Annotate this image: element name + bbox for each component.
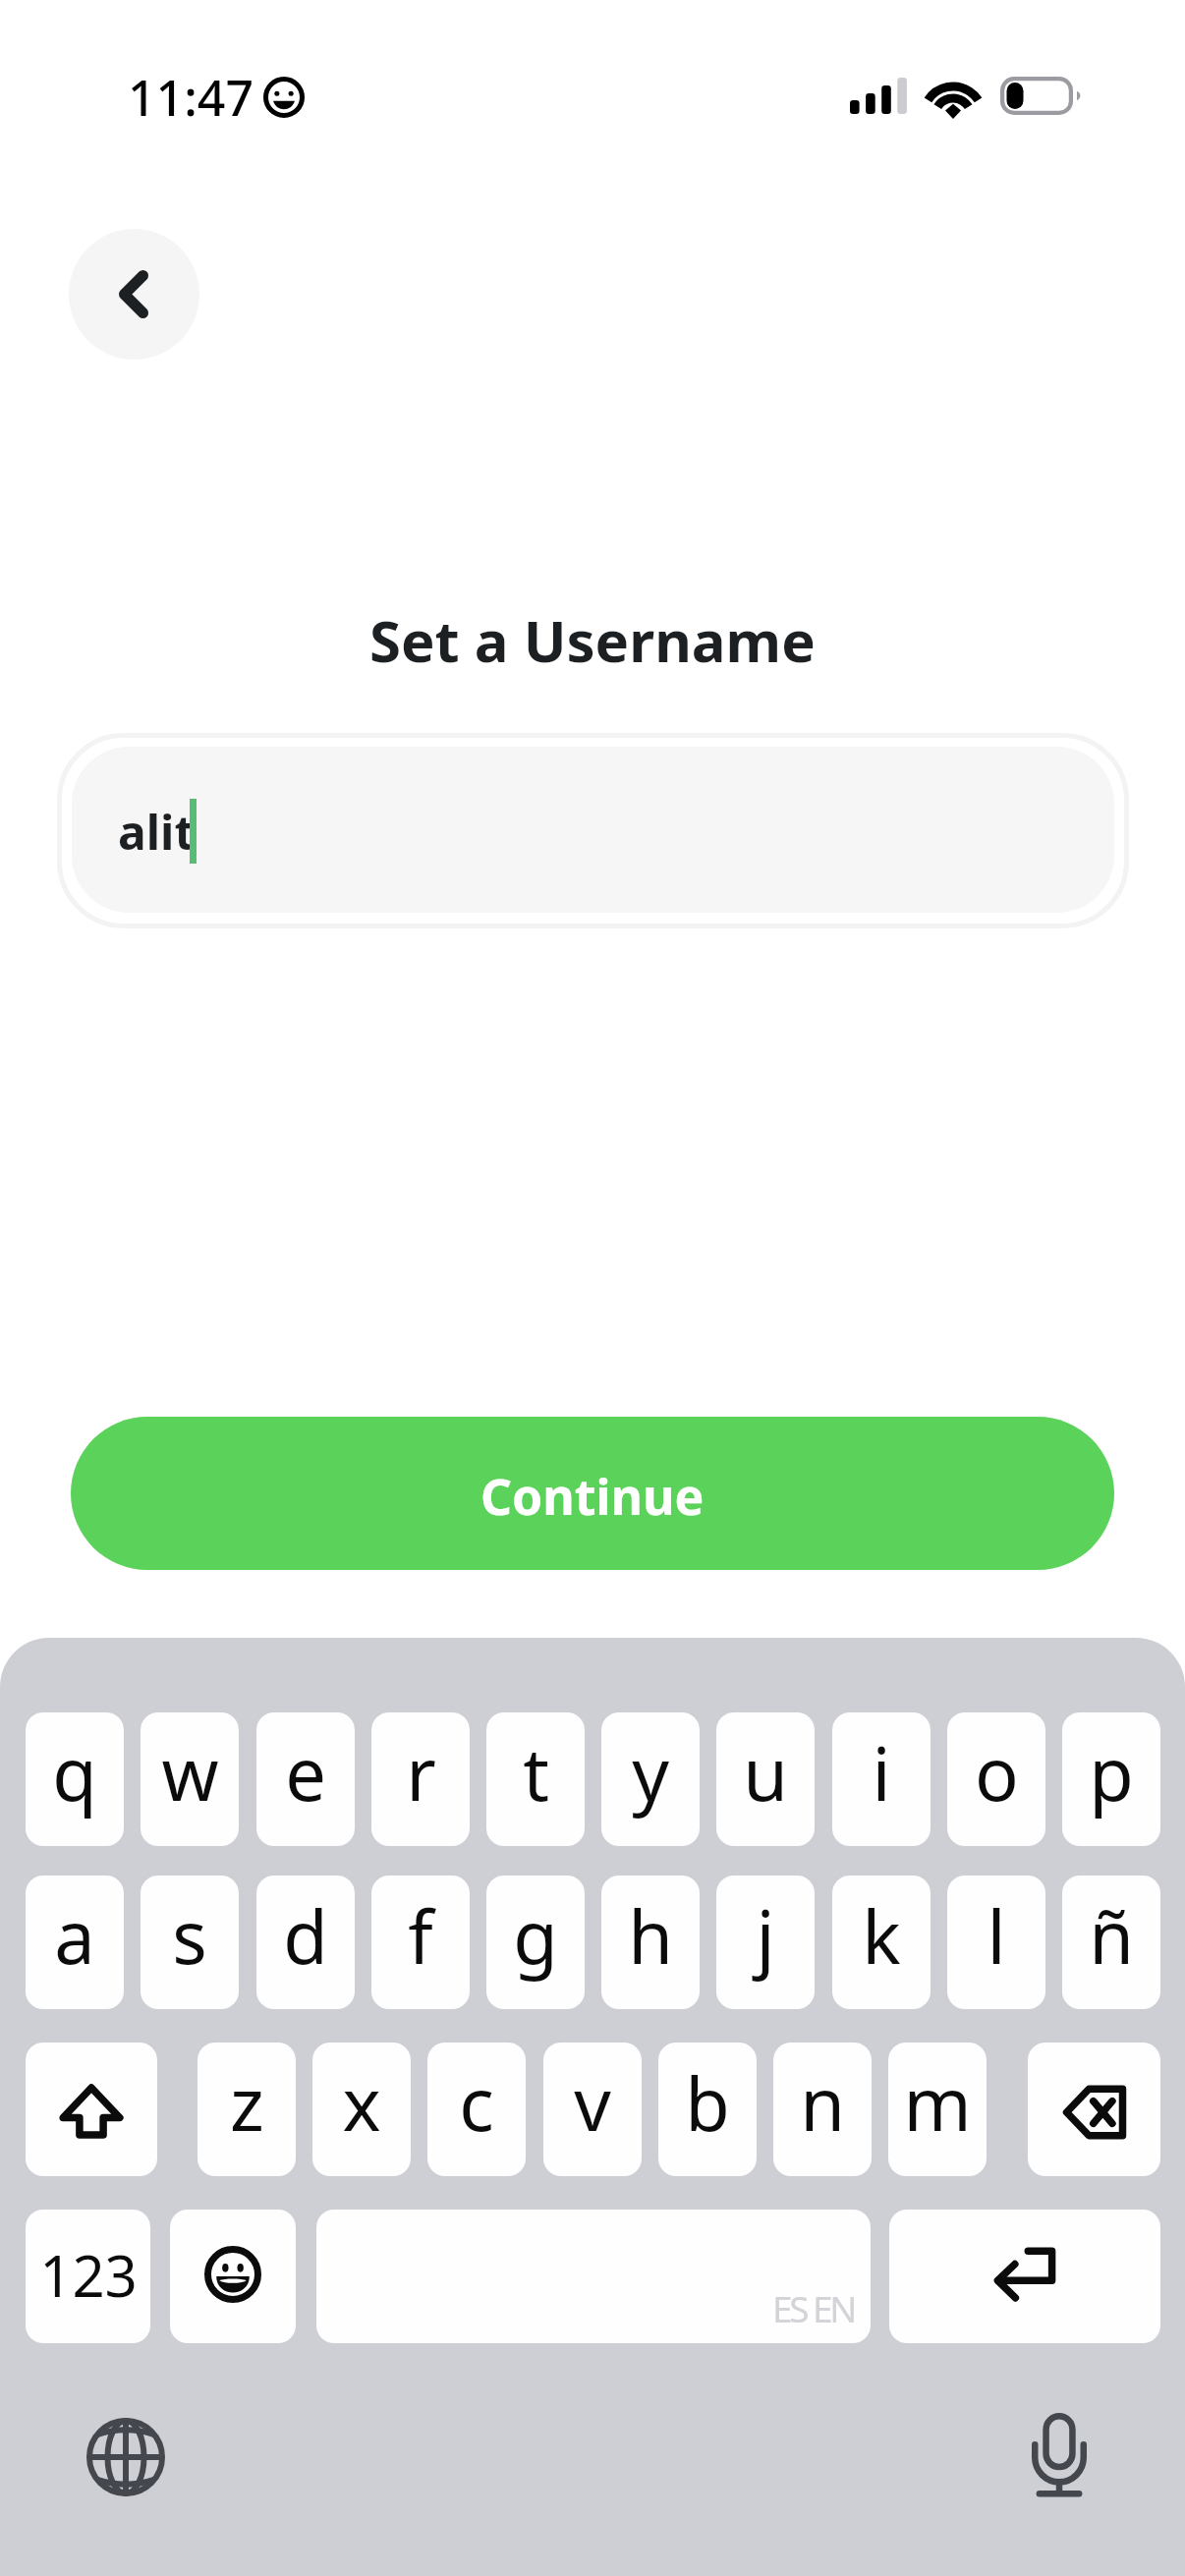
button[interactable]: alit <box>57 733 1129 928</box>
button[interactable]: Emoji <box>170 2210 296 2343</box>
staticText: 123 <box>39 2236 138 2314</box>
staticText: v <box>574 2053 611 2153</box>
button[interactable]: Space <box>316 2210 871 2343</box>
button[interactable]: r <box>371 1712 470 1846</box>
button[interactable]: u <box>716 1712 815 1846</box>
staticText: alit <box>118 800 196 864</box>
button[interactable]: k <box>832 1876 931 2009</box>
staticText: o <box>975 1723 1019 1822</box>
button[interactable]: l <box>947 1876 1045 2009</box>
staticText: ñ <box>1089 1886 1134 1986</box>
button[interactable]: f <box>371 1876 470 2009</box>
staticText: n <box>800 2053 845 2153</box>
staticText: x <box>342 2053 381 2153</box>
staticText: z <box>230 2053 264 2153</box>
button[interactable]: h <box>601 1876 700 2009</box>
staticText: m <box>903 2053 972 2153</box>
button[interactable]: z <box>197 2043 296 2176</box>
button[interactable]: i <box>832 1712 931 1846</box>
staticText: f <box>408 1886 433 1986</box>
button[interactable]: n <box>773 2043 872 2176</box>
staticText: d <box>283 1886 328 1986</box>
button[interactable]: y <box>601 1712 700 1846</box>
button[interactable]: Continue <box>71 1417 1114 1570</box>
button[interactable]: Backspace <box>1028 2043 1160 2176</box>
staticText: c <box>459 2053 494 2153</box>
staticText: g <box>513 1886 558 1986</box>
staticText: u <box>743 1723 788 1822</box>
staticText: a <box>54 1886 95 1986</box>
button[interactable]: Shift <box>26 2043 157 2176</box>
staticText: 11:47 <box>128 64 254 131</box>
staticText: r <box>406 1723 436 1822</box>
button[interactable]: c <box>427 2043 526 2176</box>
staticText: s <box>172 1886 207 1986</box>
staticText: q <box>52 1723 97 1822</box>
button[interactable]: v <box>543 2043 642 2176</box>
button[interactable]: d <box>256 1876 355 2009</box>
button[interactable]: Return <box>889 2210 1160 2343</box>
staticText: k <box>862 1886 901 1986</box>
staticText: j <box>756 1886 775 1986</box>
button[interactable]: 123 <box>26 2210 150 2343</box>
staticText: Set a Username <box>369 601 816 679</box>
button[interactable]: g <box>486 1876 585 2009</box>
button[interactable]: o <box>947 1712 1045 1846</box>
button[interactable]: Back <box>69 229 199 360</box>
button[interactable]: p <box>1062 1712 1160 1846</box>
button[interactable]: Voice input <box>1000 2396 1118 2514</box>
staticText: p <box>1089 1723 1134 1822</box>
staticText: Continue <box>480 1463 705 1530</box>
staticText: ES EN <box>772 2283 855 2332</box>
button[interactable]: Change keyboard <box>67 2398 185 2516</box>
staticText: w <box>161 1723 219 1822</box>
button[interactable]: x <box>312 2043 411 2176</box>
button[interactable]: a <box>26 1876 124 2009</box>
staticText: b <box>685 2053 730 2153</box>
button[interactable]: m <box>888 2043 987 2176</box>
button[interactable]: s <box>141 1876 239 2009</box>
staticText: e <box>285 1723 326 1822</box>
button[interactable]: t <box>486 1712 585 1846</box>
button[interactable]: b <box>658 2043 757 2176</box>
button[interactable]: q <box>26 1712 124 1846</box>
staticText: y <box>632 1723 669 1822</box>
staticText: t <box>523 1723 549 1822</box>
button[interactable]: e <box>256 1712 355 1846</box>
staticText: i <box>872 1723 891 1822</box>
button[interactable]: j <box>716 1876 815 2009</box>
button[interactable]: ñ <box>1062 1876 1160 2009</box>
button[interactable]: w <box>141 1712 239 1846</box>
staticText: h <box>628 1886 673 1986</box>
staticText: l <box>987 1886 1006 1986</box>
